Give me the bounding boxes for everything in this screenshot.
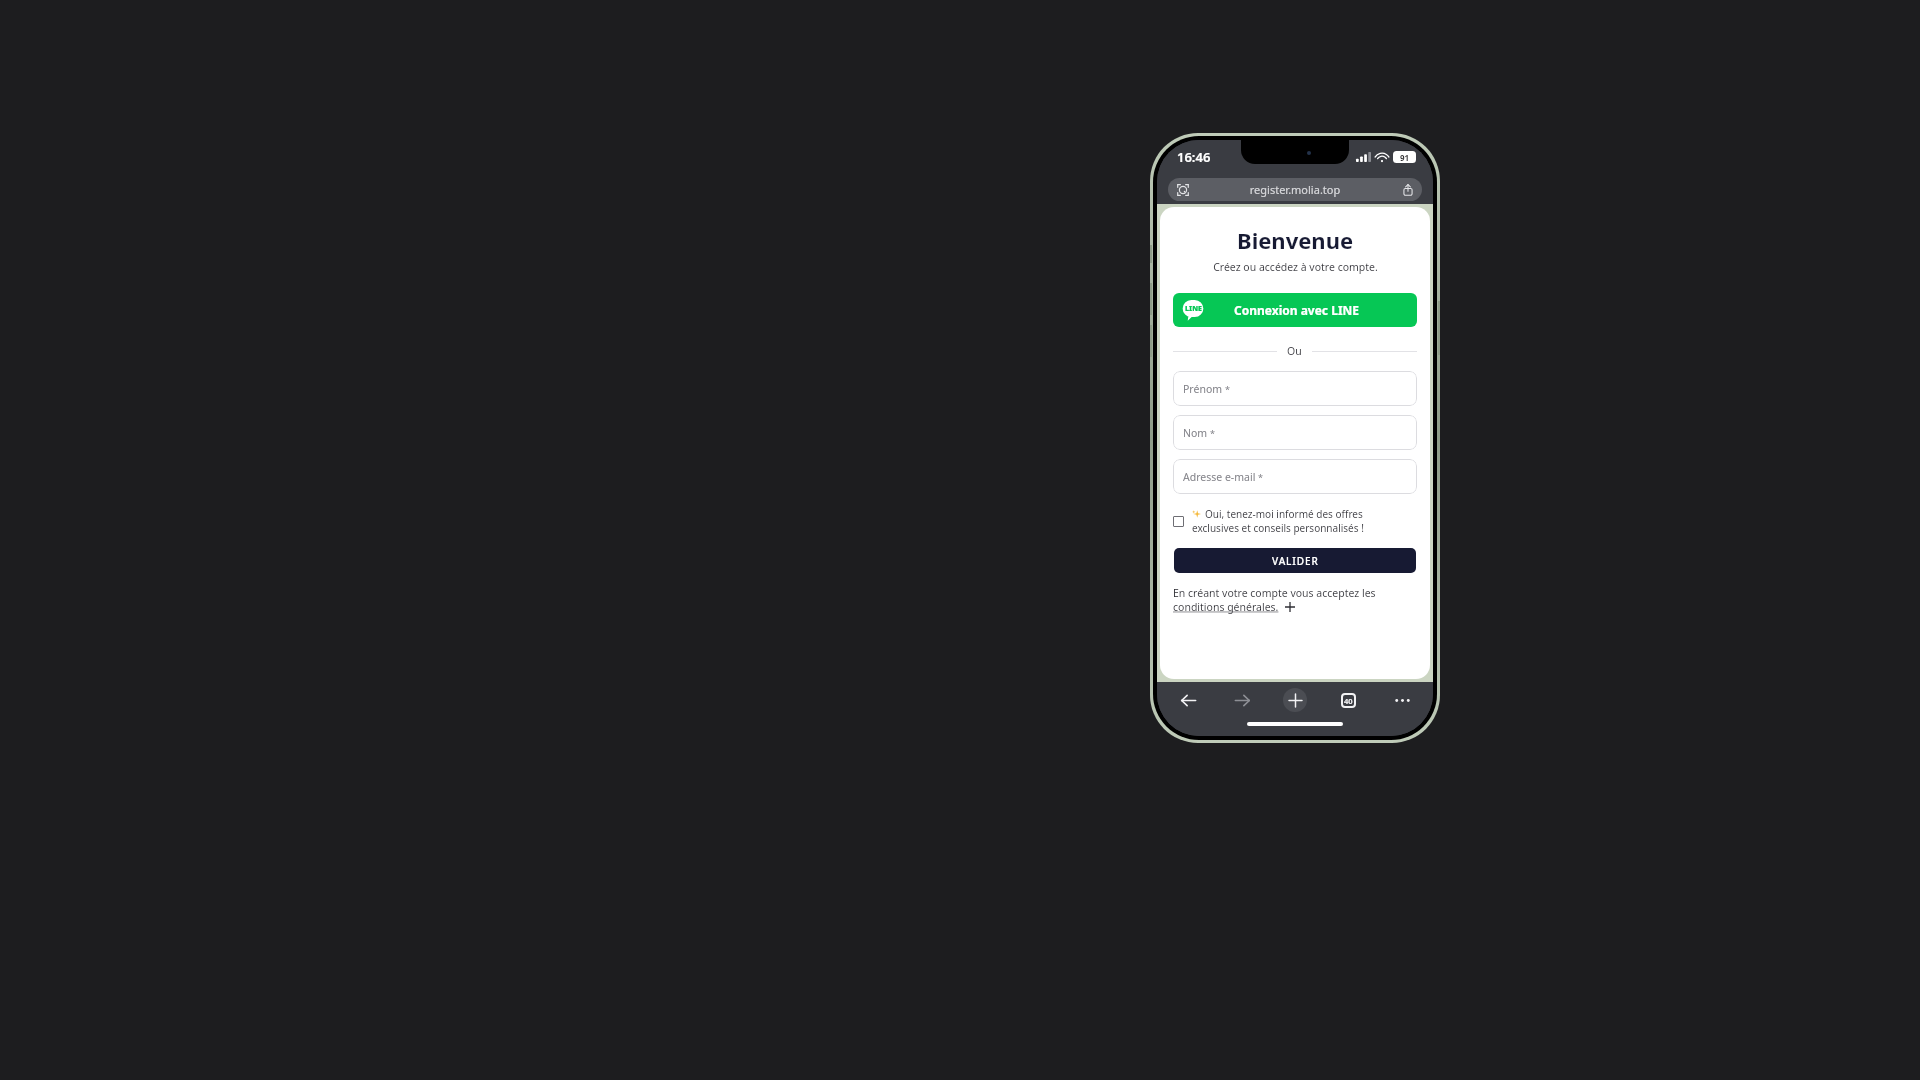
staticText: * [1258,471,1263,483]
button[interactable]: Back [1175,687,1201,713]
button[interactable]: VALIDER [1174,548,1416,573]
other: Opt in to offers [1173,516,1184,527]
button[interactable]: LINE [1173,293,1417,327]
button[interactable]: More [1389,687,1415,713]
staticText: LINE [1185,304,1202,314]
staticText: * [1210,427,1215,439]
staticText: 91 [1400,152,1410,163]
staticText: * [1225,383,1230,395]
button[interactable]: New tab [1283,688,1307,712]
staticText: Ou [1287,344,1302,358]
button[interactable]: Opt in to offers [1173,507,1417,535]
button[interactable]: Tabs [1335,687,1361,713]
button[interactable]: Expand terms [1285,602,1295,612]
staticText: 16:46 [1177,148,1211,166]
button[interactable]: Page settings [1168,178,1422,201]
button[interactable]: Forward [1229,687,1255,713]
staticText: exclusives et conseils personnalisés ! [1192,521,1364,535]
button[interactable]: Share [1400,182,1415,197]
staticText: Bienvenue [1237,225,1354,255]
staticText: Prénom [1183,382,1223,396]
staticText: En créant votre compte vous acceptez les [1173,586,1376,600]
button[interactable]: Page settings [1175,182,1190,197]
staticText: register.molia.top [1190,182,1400,197]
button[interactable]: conditions générales. [1173,600,1279,614]
staticText: Connexion avec LINE [1204,302,1389,318]
staticText: Oui, tenez-moi informé des offres [1205,507,1363,521]
staticText: Adresse e-mail [1183,470,1256,484]
staticText: 40 [1344,696,1353,706]
staticText: VALIDER [1272,554,1319,568]
button[interactable]: Nom [1173,415,1417,450]
staticText: Nom [1183,426,1208,440]
staticText: Créez ou accédez à votre compte. [1213,260,1378,274]
button[interactable]: Adresse e-mail [1173,459,1417,494]
button[interactable]: Prénom [1173,371,1417,406]
